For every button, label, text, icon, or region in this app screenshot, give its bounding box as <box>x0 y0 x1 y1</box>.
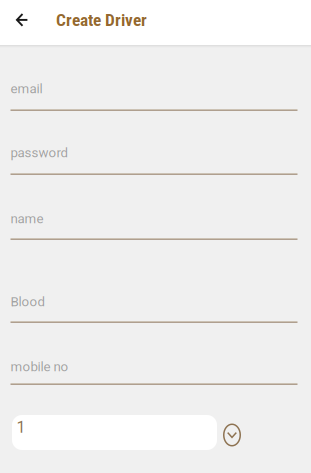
staticText: mobile no <box>10 359 68 375</box>
staticText: Create Driver <box>56 10 147 30</box>
button[interactable]: Back <box>5 3 39 37</box>
staticText: Blood <box>10 294 45 310</box>
staticText: email <box>10 81 42 97</box>
staticText: 1 <box>16 418 25 437</box>
staticText: password <box>10 145 68 161</box>
button[interactable]: Choose <box>221 422 243 448</box>
staticText: name <box>10 211 43 227</box>
button[interactable]: 1 <box>12 415 217 450</box>
